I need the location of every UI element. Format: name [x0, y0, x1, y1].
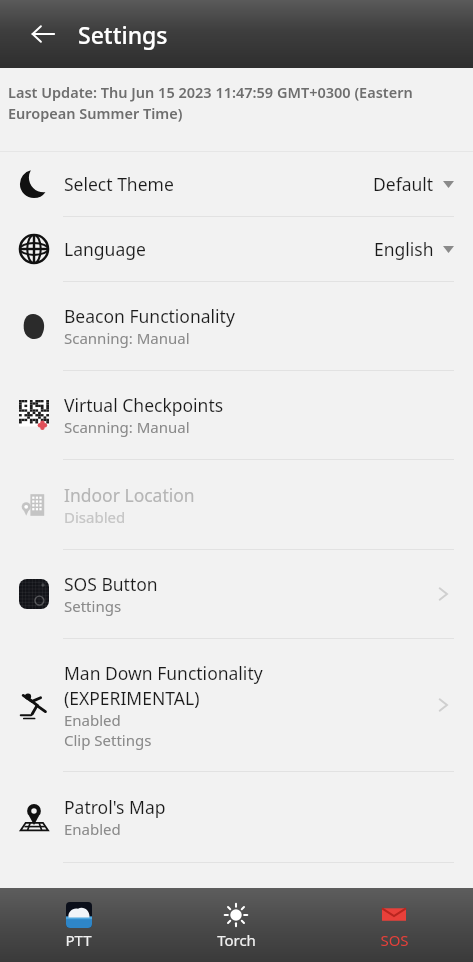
staticText: Torch — [217, 930, 256, 950]
button[interactable]: Indoor Location — [0, 460, 473, 549]
staticText: Last Update: Thu Jun 15 2023 11:47:59 GM… — [8, 82, 467, 124]
button[interactable]: Torch — [157, 895, 315, 956]
staticText: SOS Button — [64, 572, 158, 596]
staticText: Clip Settings — [64, 730, 152, 750]
staticText: Enabled — [64, 819, 121, 839]
button[interactable]: Back — [22, 13, 64, 55]
staticText: Language — [64, 237, 146, 261]
staticText: Settings — [78, 19, 168, 50]
staticText: Indoor Location — [64, 483, 195, 507]
button[interactable]: Man Down Functionality (EXPERIMENTAL) — [0, 639, 473, 771]
staticText: SOS — [380, 930, 409, 950]
button[interactable]: SOS — [315, 895, 473, 956]
staticText: Man Down Functionality (EXPERIMENTAL) — [64, 661, 263, 710]
button[interactable]: Beacon Functionality — [0, 282, 473, 370]
button[interactable]: Select Theme — [0, 152, 473, 216]
staticText: Select Theme — [64, 172, 174, 196]
staticText: Patrol's Map — [64, 795, 166, 819]
button[interactable]: Patrol's Map — [0, 772, 473, 862]
staticText: English — [374, 237, 434, 261]
other: Open — [432, 694, 454, 716]
button[interactable]: Virtual Checkpoints — [0, 371, 473, 459]
staticText: Settings — [64, 596, 122, 616]
other: Open — [432, 583, 454, 605]
staticText: Default — [373, 172, 434, 196]
staticText: Disabled — [64, 507, 126, 527]
button[interactable]: PTT — [0, 895, 157, 956]
staticText: PTT — [65, 930, 92, 950]
staticText: Virtual Checkpoints — [64, 393, 224, 417]
staticText: Scanning: Manual — [64, 328, 190, 348]
button[interactable]: SOS Button — [0, 550, 473, 638]
button[interactable]: Language — [0, 217, 473, 281]
staticText: Beacon Functionality — [64, 304, 235, 328]
staticText: Scanning: Manual — [64, 417, 190, 437]
staticText: Enabled — [64, 710, 121, 730]
